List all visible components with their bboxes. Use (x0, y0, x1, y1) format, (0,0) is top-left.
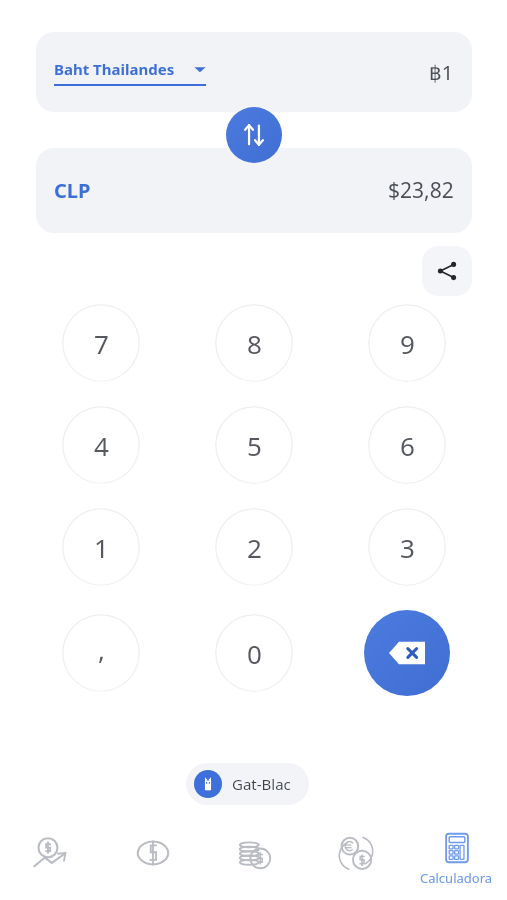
staticText: 6 (400, 428, 415, 463)
button[interactable]: , (62, 614, 140, 692)
button[interactable]: 1 (62, 508, 140, 586)
button[interactable]: Coins (204, 818, 305, 900)
staticText: 9 (400, 326, 415, 361)
button[interactable]: CLP (36, 148, 472, 233)
button[interactable]: Trend (0, 818, 102, 900)
staticText: Calculadora (420, 869, 493, 887)
button[interactable]: 2 (215, 508, 293, 586)
staticText: 7 (94, 326, 109, 361)
staticText: CLP (54, 177, 388, 204)
button[interactable]: Gat-Blac (186, 763, 309, 805)
staticText: 4 (94, 428, 109, 463)
staticText: Gat-Blac (232, 774, 291, 794)
button[interactable]: Calculadora (406, 818, 507, 900)
staticText: ฿1 (429, 59, 454, 86)
button[interactable]: 0 (215, 614, 293, 692)
button[interactable]: Swap currencies (226, 107, 282, 163)
staticText: , (98, 632, 105, 667)
button[interactable]: Share (422, 246, 472, 296)
button[interactable]: 9 (368, 304, 446, 382)
button[interactable]: 8 (215, 304, 293, 382)
button[interactable]: 6 (368, 406, 446, 484)
staticText: $23,82 (388, 176, 454, 205)
staticText: 3 (400, 530, 415, 565)
staticText: 5 (247, 428, 262, 463)
button[interactable]: Exchange (305, 818, 406, 900)
staticText: 0 (247, 636, 262, 671)
staticText: 8 (247, 326, 262, 361)
staticText: 2 (247, 530, 262, 565)
staticText: 1 (94, 530, 109, 565)
button[interactable]: Baht Thailandes (36, 32, 472, 112)
button[interactable]: 5 (215, 406, 293, 484)
button[interactable]: 4 (62, 406, 140, 484)
button[interactable]: Delete (364, 610, 450, 696)
staticText: Baht Thailandes (54, 59, 175, 79)
button[interactable]: 7 (62, 304, 140, 382)
button[interactable]: 3 (368, 508, 446, 586)
button[interactable]: Convert (102, 818, 204, 900)
